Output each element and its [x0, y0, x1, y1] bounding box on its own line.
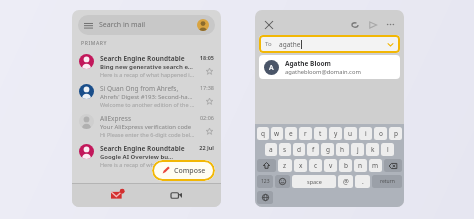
button[interactable]: f [307, 143, 319, 156]
staticText: Here is a recap of what h… [100, 161, 169, 168]
button[interactable]: z [278, 159, 292, 172]
button[interactable]: Mail [104, 183, 130, 207]
staticText: q [261, 129, 265, 138]
staticText: agathe [279, 40, 301, 49]
button[interactable]: Send [366, 18, 379, 31]
button[interactable]: c [309, 159, 322, 172]
staticText: @ [343, 177, 349, 186]
staticText: Si Quan Ong from Ahrefs, [100, 84, 179, 93]
staticText: f [312, 145, 315, 154]
button[interactable]: l [381, 143, 394, 156]
staticText: b [344, 161, 348, 170]
button[interactable]: d [293, 143, 305, 156]
staticText: z [283, 161, 287, 170]
staticText: h [340, 145, 345, 154]
button[interactable]: h [336, 143, 349, 156]
staticText: w [274, 129, 280, 138]
staticText: k [371, 145, 375, 154]
button[interactable]: y [329, 127, 342, 140]
staticText: g [326, 145, 330, 154]
staticText: c [314, 161, 318, 170]
staticText: p [394, 129, 398, 138]
button[interactable]: r [299, 127, 312, 140]
button[interactable]: i [359, 127, 372, 140]
button[interactable]: Star [204, 66, 214, 76]
button[interactable]: w [271, 127, 283, 140]
staticText: y [334, 129, 338, 138]
staticText: AliExpress [100, 114, 132, 123]
button[interactable]: More options [384, 18, 397, 31]
button[interactable]: A [259, 55, 400, 79]
button[interactable]: Emoji [275, 175, 290, 188]
button[interactable]: v [324, 159, 337, 172]
staticText: . [362, 177, 364, 186]
button[interactable]: Meet [163, 183, 189, 207]
staticText: Here is a recap of what happened in the… [100, 71, 196, 78]
button[interactable]: q [257, 127, 269, 140]
staticText: Search Engine Roundtable [100, 144, 185, 153]
other: Expand [387, 41, 394, 48]
other: Menu [84, 21, 93, 30]
button[interactable]: t [314, 127, 327, 140]
staticText: r [304, 129, 307, 138]
button[interactable]: Search Engine Roundtable [72, 51, 221, 81]
staticText: 02:06 [199, 114, 214, 121]
button[interactable]: p [389, 127, 402, 140]
button[interactable]: Backspace [384, 159, 402, 172]
button[interactable]: Close [262, 18, 275, 31]
button[interactable]: o [374, 127, 387, 140]
button[interactable]: @ [338, 175, 353, 188]
staticText: PRIMARY [81, 40, 108, 47]
staticText: space [307, 178, 322, 185]
staticText: Search Engine Roundtable [100, 54, 185, 63]
button[interactable]: Star [204, 126, 214, 136]
staticText: t [319, 129, 322, 138]
staticText: 17:38 [199, 84, 214, 91]
staticText: s [283, 145, 287, 154]
staticText: 18:05 [199, 54, 214, 61]
button[interactable]: u [344, 127, 357, 140]
button[interactable]: s [279, 143, 291, 156]
button[interactable]: Language [257, 191, 273, 204]
button[interactable]: Star [204, 96, 214, 106]
staticText: l [387, 145, 389, 154]
staticText: Bing new generative search experien… [100, 63, 196, 71]
staticText: To [265, 40, 272, 48]
button[interactable]: b [339, 159, 352, 172]
button[interactable]: Compose [152, 160, 215, 181]
button[interactable]: Shift [257, 159, 276, 172]
button[interactable]: To [259, 35, 400, 53]
button[interactable]: g [321, 143, 334, 156]
staticText: a [269, 145, 273, 154]
staticText: u [348, 129, 353, 138]
button[interactable]: e [285, 127, 297, 140]
staticText: 22 Jul [199, 144, 214, 151]
staticText: return [380, 178, 395, 185]
staticText: Your AliExpress verification code [100, 123, 192, 131]
button[interactable]: AliExpress [72, 111, 221, 141]
staticText: i [365, 129, 367, 138]
button[interactable]: k [366, 143, 379, 156]
button[interactable]: a [265, 143, 277, 156]
staticText: 123 [261, 178, 270, 185]
button[interactable]: Si Quan Ong from Ahrefs, [72, 81, 221, 111]
button[interactable]: . [355, 175, 370, 188]
button[interactable]: Numbers [257, 175, 273, 188]
button[interactable]: Menu [78, 15, 215, 35]
button[interactable]: Attach file [348, 18, 361, 31]
staticText: Agathe Bloom [285, 59, 331, 68]
button[interactable]: Account [197, 19, 209, 31]
button[interactable]: space [292, 175, 336, 188]
staticText: Google AI Overview bu… [100, 153, 174, 161]
button[interactable]: j [351, 143, 364, 156]
staticText: agathebloom@domain.com [285, 68, 361, 76]
button[interactable]: m [369, 159, 382, 172]
button[interactable]: x [294, 159, 307, 172]
button[interactable]: n [354, 159, 367, 172]
staticText: e [289, 129, 293, 138]
button[interactable]: Search Engine Roundtable [72, 141, 221, 171]
staticText: Compose [174, 166, 206, 176]
staticText: d [297, 145, 301, 154]
staticText: Ahrefs' Digest #193: Second-hand sear… [100, 93, 196, 101]
button[interactable]: Return [372, 175, 402, 188]
